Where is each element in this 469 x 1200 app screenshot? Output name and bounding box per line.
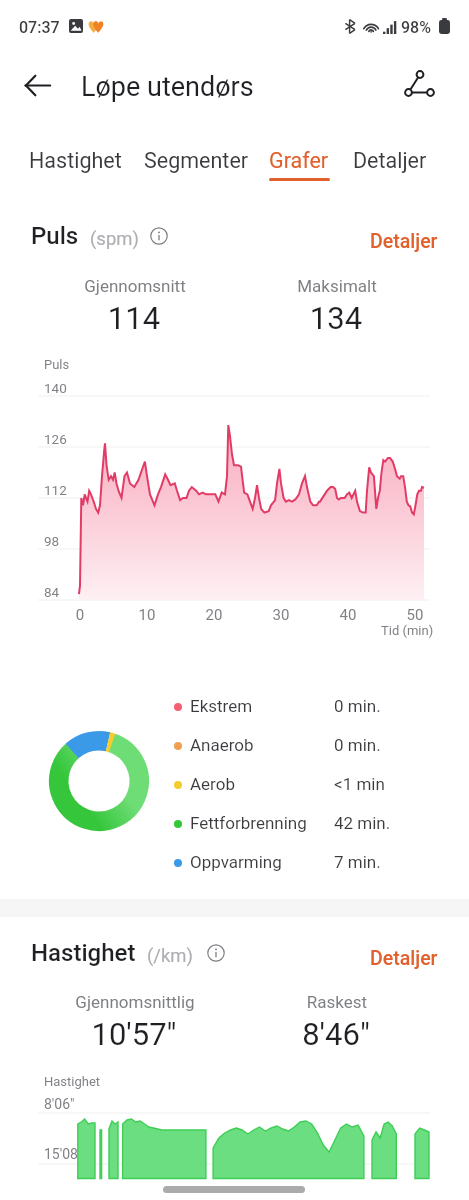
staticText: Gjennomsnitt: [15, 276, 255, 296]
staticText: 8'06": [44, 1096, 75, 1112]
staticText: 40: [328, 606, 368, 624]
staticText: 134: [216, 300, 456, 336]
staticText: 8'46": [216, 1016, 456, 1052]
staticText: Segmenter: [144, 148, 249, 173]
staticText: Gjennomsnittlig: [15, 992, 255, 1012]
staticText: <1 min: [334, 774, 385, 794]
staticText: Ekstrem: [190, 696, 253, 716]
button[interactable]: Detaljer: [360, 226, 448, 256]
staticText: 0 min.: [334, 735, 381, 755]
staticText: 0 min.: [334, 696, 381, 716]
staticText: Detaljer: [353, 148, 427, 173]
button[interactable]: Detaljer: [360, 943, 448, 973]
staticText: Løpe utendørs: [81, 71, 254, 103]
staticText: Puls: [44, 357, 70, 372]
staticText: Fettforbrenning: [190, 813, 307, 833]
staticText: 07:37: [19, 18, 60, 37]
staticText: 112: [44, 482, 67, 498]
staticText: Hastighet: [44, 1074, 101, 1089]
staticText: Detaljer: [370, 947, 438, 970]
button[interactable]: Hastighet: [17, 132, 133, 184]
staticText: 114: [14, 300, 254, 336]
staticText: 42 min.: [334, 813, 391, 833]
button[interactable]: Oppvarming: [168, 851, 438, 882]
staticText: 140: [44, 380, 67, 396]
staticText: 30: [261, 606, 301, 624]
staticText: 10'57": [14, 1016, 254, 1052]
staticText: 10: [127, 606, 167, 624]
staticText: 20: [194, 606, 234, 624]
staticText: Raskest: [217, 992, 457, 1012]
button[interactable]: Segmenter: [138, 132, 254, 184]
staticText: (/km): [147, 945, 194, 967]
staticText: Oppvarming: [190, 852, 282, 872]
staticText: 98%: [401, 18, 431, 37]
staticText: Anaerob: [190, 735, 254, 755]
staticText: Hastighet: [31, 939, 136, 967]
button[interactable]: Fettforbrenning: [168, 812, 438, 843]
staticText: 98: [44, 533, 60, 549]
button[interactable]: Detaljer: [332, 132, 448, 184]
staticText: (spm): [90, 228, 139, 250]
staticText: 7 min.: [334, 852, 381, 872]
button[interactable]: Anaerob: [168, 734, 438, 765]
staticText: Grafer: [269, 148, 329, 173]
staticText: 15'08": [44, 1146, 83, 1162]
staticText: 126: [44, 431, 67, 447]
button[interactable]: Aerob: [168, 773, 438, 804]
button[interactable]: Ekstrem: [168, 695, 438, 726]
button[interactable]: Grafer: [241, 132, 357, 184]
staticText: 50: [395, 606, 435, 624]
staticText: 0: [60, 606, 100, 624]
button[interactable]: Back: [13, 61, 61, 109]
staticText: Aerob: [190, 774, 235, 794]
staticText: Maksimalt: [217, 276, 457, 296]
staticText: 84: [44, 584, 60, 600]
staticText: Hastighet: [29, 148, 122, 173]
staticText: Tid (min): [381, 623, 434, 638]
button[interactable]: Info: [148, 225, 170, 247]
button[interactable]: Info: [205, 942, 227, 964]
button[interactable]: Share: [397, 64, 445, 112]
staticText: Puls: [31, 222, 79, 250]
staticText: Detaljer: [370, 230, 438, 253]
